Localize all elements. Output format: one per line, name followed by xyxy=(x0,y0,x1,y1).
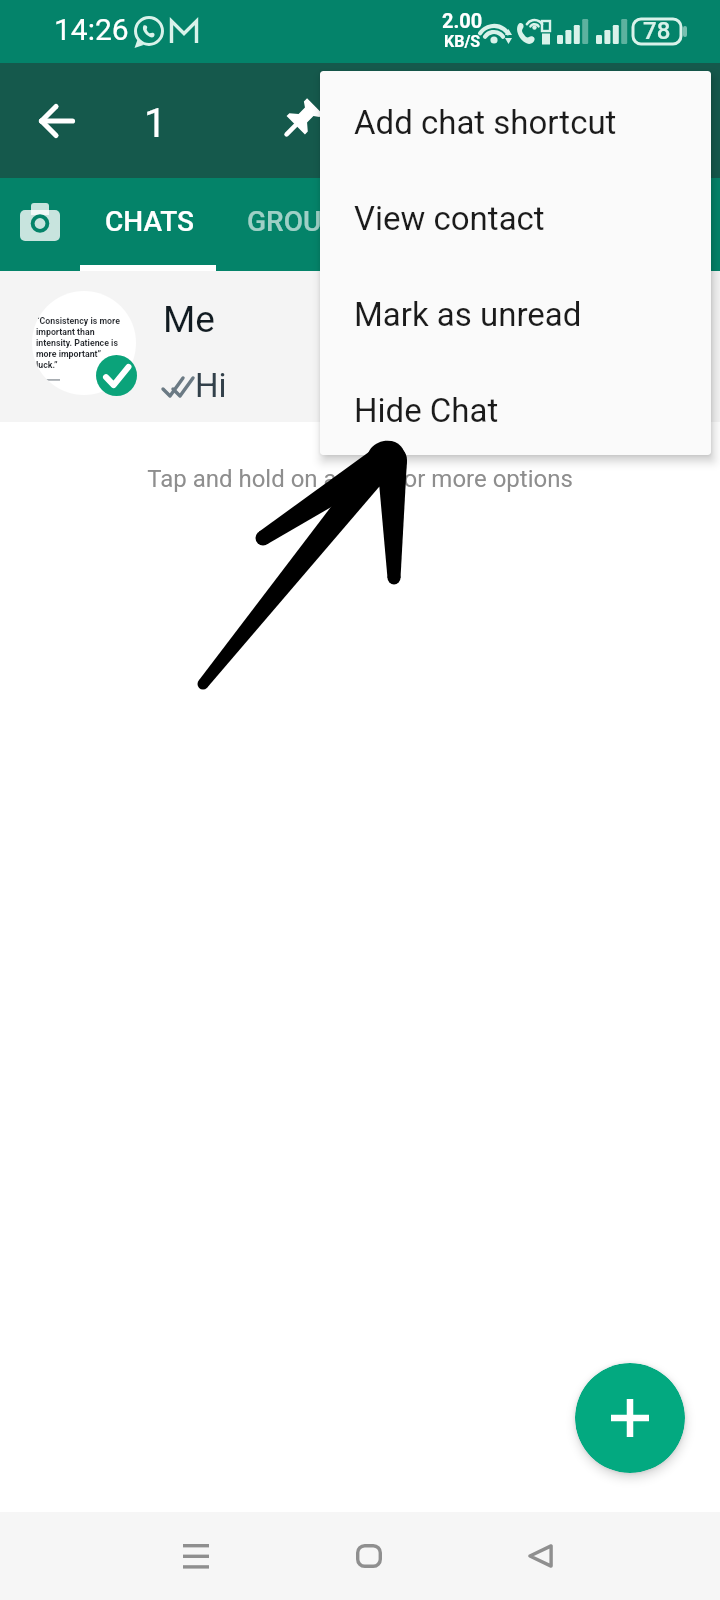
button[interactable]: Mark as unread xyxy=(320,263,711,359)
button[interactable]: Pin chat xyxy=(268,89,332,153)
staticText: 14:26 xyxy=(54,12,129,47)
button[interactable]: View contact xyxy=(320,167,711,263)
staticText: Tap and hold on a chat for more options xyxy=(0,465,720,493)
staticText: 1 xyxy=(144,100,167,147)
button[interactable]: “Consistency is more important than inte… xyxy=(0,271,720,422)
staticText: Hi xyxy=(195,366,227,405)
button[interactable]: Home xyxy=(334,1521,404,1591)
button[interactable]: CHATS xyxy=(80,178,216,271)
staticText: GROUPS xyxy=(247,205,357,238)
staticText: Mark as unread xyxy=(354,295,582,334)
staticText: Add chat shortcut xyxy=(354,103,617,142)
staticText: CHATS xyxy=(105,205,195,238)
staticText: View contact xyxy=(354,199,545,238)
staticText: Me xyxy=(163,298,215,341)
staticText: Hide Chat xyxy=(354,391,499,430)
button[interactable]: Hide Chat xyxy=(320,359,711,455)
button[interactable]: Camera xyxy=(8,193,72,257)
button[interactable]: GROUPS xyxy=(216,178,383,271)
staticText: 78 xyxy=(643,17,671,45)
button[interactable]: Back xyxy=(25,89,89,153)
button[interactable]: Add chat shortcut xyxy=(320,71,711,167)
staticText: “Consistency is more important than inte… xyxy=(36,316,122,370)
button[interactable]: Recent apps xyxy=(161,1521,231,1591)
button[interactable]: New chat xyxy=(575,1363,685,1473)
button[interactable]: Back xyxy=(505,1521,575,1591)
staticText: 2.00 xyxy=(442,9,483,32)
staticText: KB/S xyxy=(444,32,481,51)
